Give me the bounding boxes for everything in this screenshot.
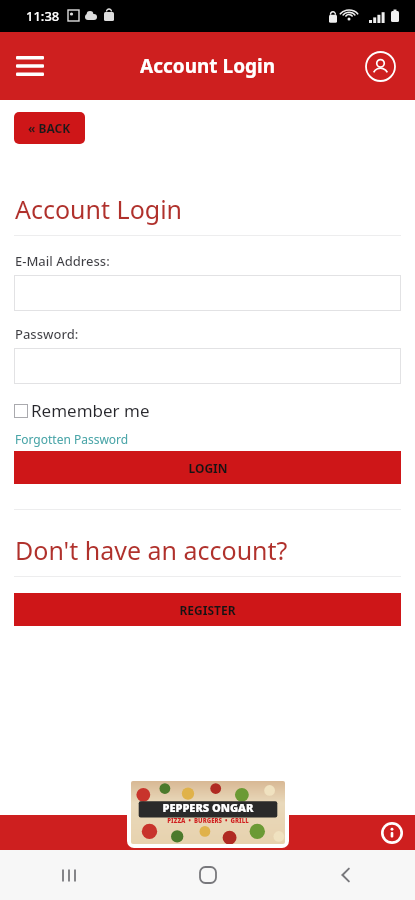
button[interactable]: Ad information	[381, 822, 403, 844]
staticText: 11:38	[26, 7, 60, 25]
button[interactable]: Remember me	[14, 399, 150, 422]
button[interactable]: Home	[139, 850, 277, 900]
button[interactable]: Open navigation menu	[12, 48, 48, 84]
button[interactable]: « BACK	[14, 112, 85, 144]
staticText: REGISTER	[179, 602, 236, 618]
button[interactable]: Back	[277, 850, 415, 900]
button[interactable]: Recent apps	[0, 850, 139, 900]
staticText: Account Login	[140, 53, 276, 79]
staticText: Account Login	[15, 192, 183, 226]
staticText: LOGIN	[188, 460, 228, 476]
staticText: Password:	[15, 325, 79, 343]
staticText: PIZZA • BURGERS • GRILL	[167, 817, 249, 825]
staticText: Remember me	[31, 399, 150, 422]
button[interactable]	[14, 275, 401, 311]
button[interactable]: Forgotten Password	[15, 431, 129, 447]
button[interactable]: Account	[363, 49, 397, 83]
staticText: PEPPERS ONGAR	[162, 800, 254, 815]
staticText: E-Mail Address:	[15, 252, 110, 270]
button[interactable]: REGISTER	[14, 593, 401, 626]
button[interactable]: LOGIN	[14, 451, 401, 484]
staticText: Don't have an account?	[15, 533, 288, 567]
button[interactable]: PEPPERS ONGAR	[127, 777, 289, 848]
button[interactable]	[14, 348, 401, 384]
staticText: « BACK	[28, 120, 71, 136]
